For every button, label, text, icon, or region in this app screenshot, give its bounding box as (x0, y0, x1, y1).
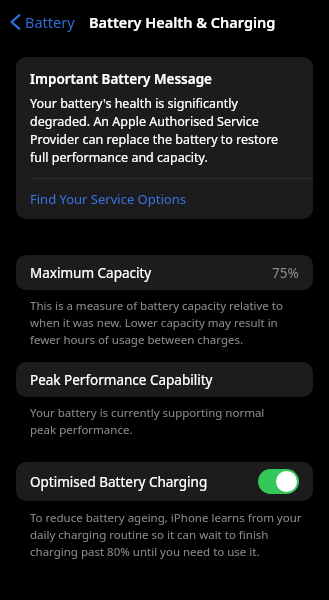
staticText: Peak Performance Capability (30, 371, 213, 389)
staticText: Optimised Battery Charging (30, 473, 208, 491)
staticText: This is a measure of battery capacity re… (30, 298, 307, 348)
button[interactable]: Peak Performance Capability (16, 362, 313, 397)
button[interactable]: Optimised Battery Charging (16, 462, 313, 501)
staticText: Important Battery Message (30, 70, 212, 88)
staticText: Your battery's health is significantly d… (30, 95, 299, 166)
staticText: Battery (25, 12, 75, 32)
button[interactable]: Battery (6, 8, 79, 36)
staticText: Maximum Capacity (30, 264, 152, 282)
button[interactable]: Find Your Service Options (16, 179, 313, 219)
staticText: 75% (272, 264, 299, 282)
button[interactable]: Optimised Battery Charging toggle (258, 469, 299, 494)
staticText: Battery Health & Charging (89, 12, 276, 32)
staticText: Your battery is currently supporting nor… (30, 405, 287, 438)
button[interactable]: Maximum Capacity (16, 255, 313, 290)
staticText: To reduce battery ageing, iPhone learns … (30, 510, 307, 560)
staticText: Find Your Service Options (30, 190, 186, 208)
